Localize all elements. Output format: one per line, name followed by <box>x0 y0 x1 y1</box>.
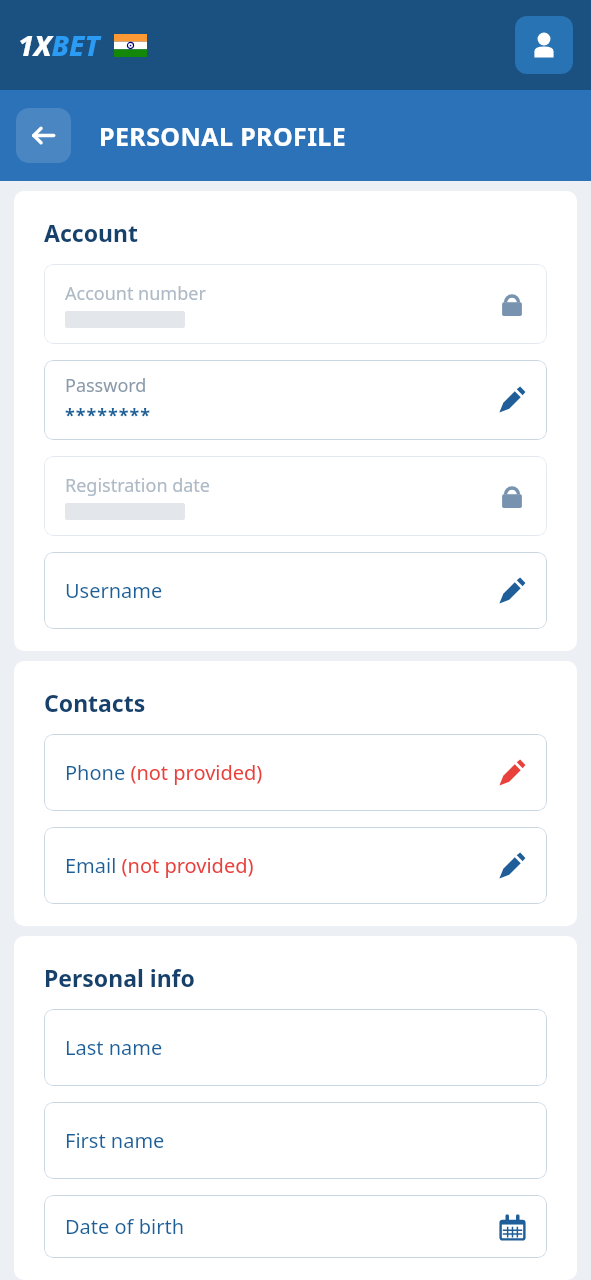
staticText: Date of birth <box>65 1213 184 1240</box>
button[interactable]: 1XBET <box>18 26 147 64</box>
staticText: Last name <box>65 1034 163 1061</box>
staticText: PERSONAL PROFILE <box>99 119 347 153</box>
staticText: Account number <box>65 281 206 306</box>
staticText: First name <box>65 1127 165 1154</box>
staticText: Registration date <box>65 473 211 498</box>
staticText: Email (not provided) <box>65 852 254 879</box>
button[interactable]: Locked <box>495 287 529 321</box>
button[interactable]: Last name <box>44 1009 547 1086</box>
button[interactable]: Edit <box>495 849 529 883</box>
button[interactable]: Password <box>44 360 547 440</box>
button[interactable]: Registration date <box>44 456 547 536</box>
staticText: 1XBET <box>18 26 100 64</box>
button[interactable]: Email (not provided) <box>44 827 547 904</box>
staticText: Username <box>65 577 163 604</box>
staticText: Phone (not provided) <box>65 759 263 786</box>
staticText: ******** <box>65 403 152 428</box>
button[interactable]: Edit <box>495 756 529 790</box>
button[interactable]: Account <box>515 16 573 74</box>
button[interactable]: Phone (not provided) <box>44 734 547 811</box>
staticText: Contacts <box>44 687 146 718</box>
button[interactable]: Pick date <box>495 1210 529 1244</box>
staticText: Account <box>44 217 138 248</box>
staticText: Password <box>65 373 147 398</box>
button[interactable]: Username <box>44 552 547 629</box>
staticText: Personal info <box>44 962 195 993</box>
button[interactable]: Account number <box>44 264 547 344</box>
button[interactable]: First name <box>44 1102 547 1179</box>
button[interactable]: Back <box>16 108 71 163</box>
button[interactable]: Date of birth <box>44 1195 547 1258</box>
button[interactable]: Edit <box>495 574 529 608</box>
button[interactable]: Edit <box>495 383 529 417</box>
button[interactable]: Locked <box>495 479 529 513</box>
